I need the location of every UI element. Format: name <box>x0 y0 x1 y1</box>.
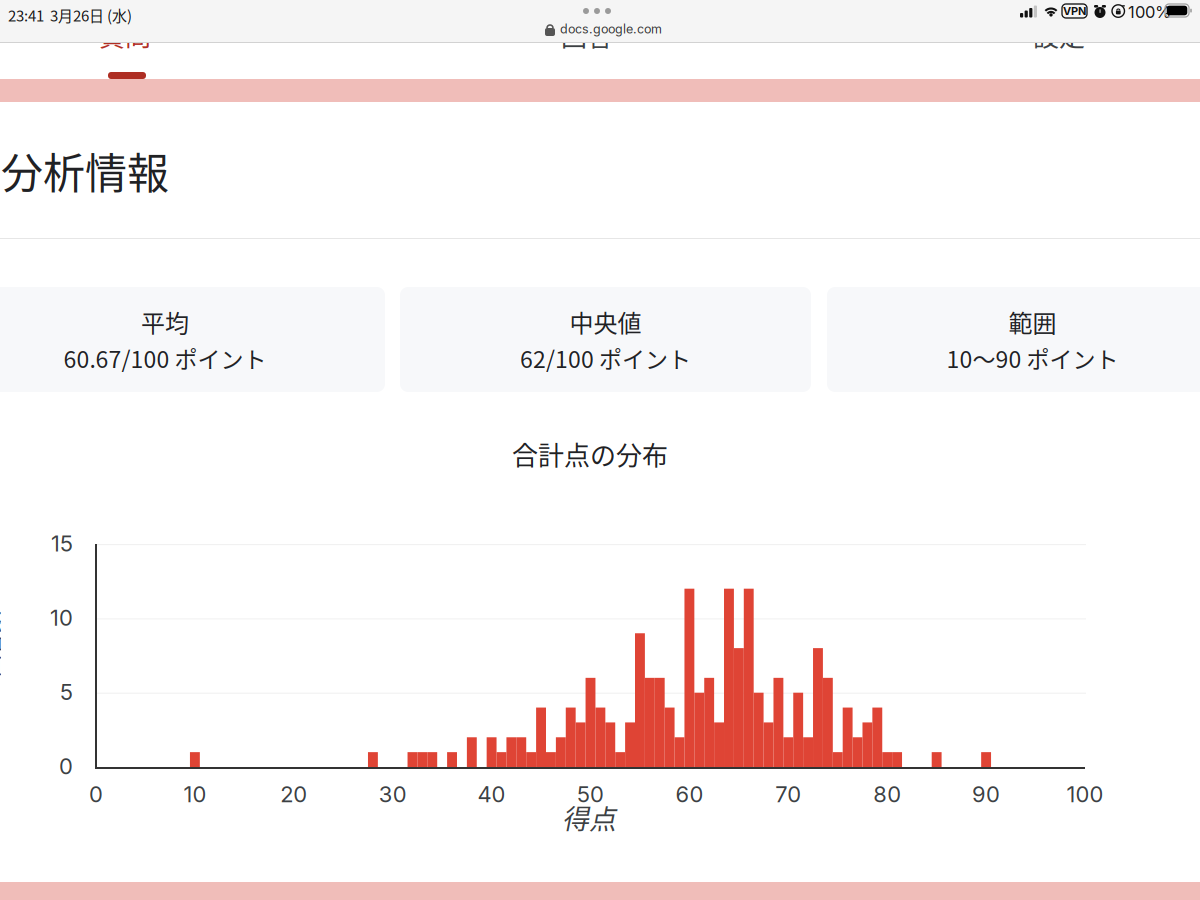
staticText: 23:41 3月26日 (水) <box>8 4 132 26</box>
staticText: 回答数 <box>0 628 22 660</box>
staticText: 80 <box>873 781 901 808</box>
staticText: 100% <box>1128 2 1171 22</box>
staticText: docs.google.com <box>560 21 662 36</box>
staticText: 中央値 <box>569 304 641 339</box>
staticText: 5 <box>60 679 73 705</box>
staticText: 得点 <box>562 798 616 837</box>
staticText: 質問 <box>99 16 151 54</box>
staticText: 平均 <box>141 304 189 339</box>
staticText: 10 <box>183 781 206 808</box>
staticText: 100 <box>1066 781 1103 808</box>
button[interactable]: 質問 <box>55 15 195 55</box>
staticText: 範囲 <box>1008 304 1056 339</box>
button[interactable]: 回答 <box>517 15 657 55</box>
button[interactable]: 設定 <box>989 15 1129 55</box>
staticText: 60 <box>675 781 703 808</box>
staticText: VPN <box>1063 4 1086 18</box>
staticText: 0 <box>59 753 73 780</box>
staticText: 60.67/100 ポイント <box>63 341 266 374</box>
staticText: 設定 <box>1033 16 1085 54</box>
staticText: 70 <box>775 781 801 808</box>
staticText: 15 <box>51 530 73 557</box>
staticText: 20 <box>280 781 307 808</box>
staticText: 回答 <box>561 16 613 54</box>
staticText: 0 <box>89 781 103 808</box>
staticText: 分析情報 <box>1 140 169 201</box>
staticText: 合計点の分布 <box>512 435 668 473</box>
staticText: 30 <box>379 781 407 808</box>
staticText: 50 <box>577 781 604 808</box>
staticText: 40 <box>478 781 506 808</box>
staticText: 62/100 ポイント <box>520 341 691 374</box>
staticText: 10 <box>50 604 73 631</box>
button[interactable]: docs.google.com <box>535 18 672 40</box>
staticText: 90 <box>972 781 1000 808</box>
staticText: 10〜90 ポイント <box>946 341 1118 374</box>
